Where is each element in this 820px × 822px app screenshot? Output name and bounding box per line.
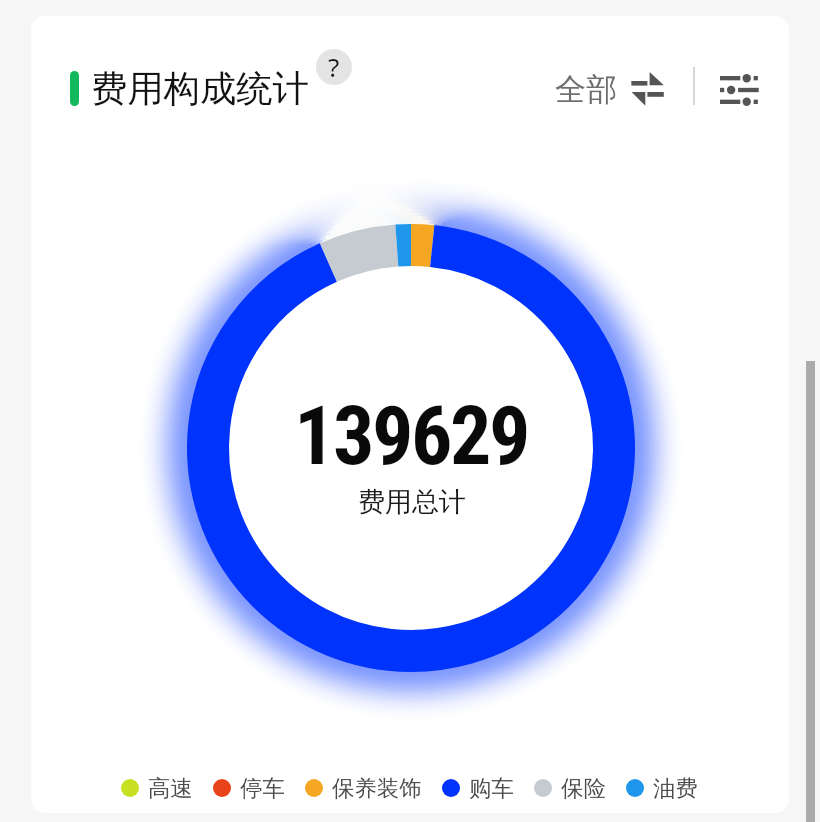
button[interactable]: 保养装饰	[305, 774, 422, 802]
staticText: 保险	[561, 774, 606, 802]
staticText: 费用总计	[358, 485, 466, 519]
staticText: 购车	[469, 774, 514, 802]
staticText: 高速	[148, 774, 193, 802]
staticText: 停车	[240, 774, 285, 802]
staticText: 全部	[555, 70, 617, 109]
button[interactable]: Filter	[710, 67, 768, 113]
button[interactable]: 全部	[555, 54, 664, 124]
button[interactable]: 停车	[213, 774, 285, 802]
staticText: ?	[328, 49, 340, 84]
button[interactable]: 高速	[121, 774, 193, 802]
staticText: 139629	[294, 388, 529, 484]
button[interactable]: 购车	[442, 774, 514, 802]
button[interactable]: 保险	[534, 774, 606, 802]
staticText: 保养装饰	[332, 774, 422, 802]
staticText: 费用构成统计	[91, 66, 309, 112]
button[interactable]: 油费	[626, 774, 698, 802]
staticText: 油费	[653, 774, 698, 802]
button[interactable]: Help	[316, 49, 352, 85]
